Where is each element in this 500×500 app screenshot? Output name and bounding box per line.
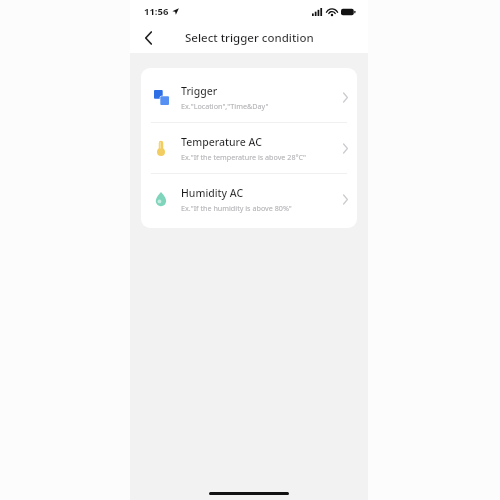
staticText: Select trigger condition [185, 30, 314, 46]
button[interactable]: Trigger [141, 72, 357, 122]
staticText: Ex."If the humidity is above 80%" [181, 203, 292, 213]
staticText: Temperature AC [181, 135, 262, 149]
button[interactable]: Temperature AC [141, 123, 357, 173]
staticText: Ex."If the temperature is above 28°C" [181, 152, 307, 162]
staticText: Humidity AC [181, 186, 244, 200]
staticText: Ex."Location","Time&Day" [181, 101, 269, 111]
button[interactable]: Humidity AC [141, 174, 357, 224]
staticText: 11:56 [144, 5, 169, 18]
staticText: Trigger [181, 84, 218, 98]
button[interactable]: Back [136, 26, 160, 50]
